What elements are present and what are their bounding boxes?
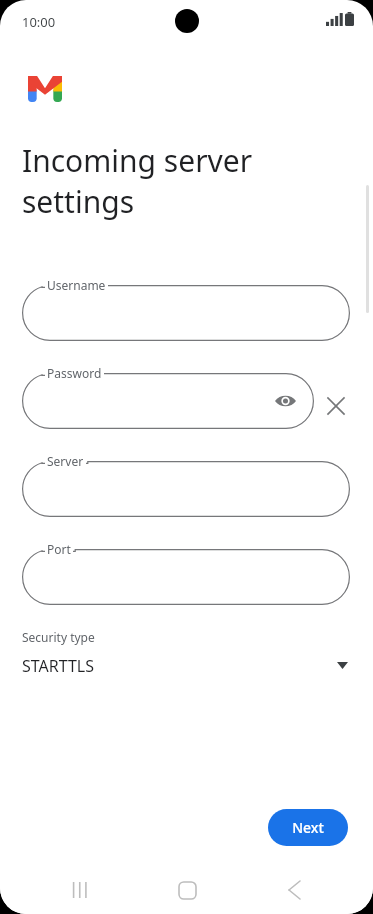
button[interactable]: Next	[268, 809, 348, 846]
staticText: 10:00	[22, 13, 56, 31]
button[interactable]: Home	[159, 866, 215, 914]
button[interactable]: Security type	[22, 625, 350, 687]
button[interactable]: Port	[22, 541, 350, 605]
staticText: Username	[47, 277, 106, 293]
button[interactable]: Username	[22, 277, 350, 341]
staticText: STARTTLS	[22, 655, 95, 677]
staticText: Next	[292, 818, 324, 837]
staticText: Security type	[22, 629, 95, 645]
staticText: Port	[47, 541, 71, 557]
button[interactable]: Back	[266, 866, 322, 914]
button[interactable]: Recent apps	[52, 866, 108, 914]
button[interactable]: Server	[22, 453, 350, 517]
button[interactable]: Password	[22, 365, 314, 429]
staticText: Incoming server	[22, 140, 253, 181]
button[interactable]: Show password	[272, 388, 298, 414]
staticText: settings	[22, 181, 135, 222]
staticText: Server	[47, 453, 84, 469]
button[interactable]: Clear password	[322, 392, 350, 420]
staticText: Password	[47, 365, 102, 381]
